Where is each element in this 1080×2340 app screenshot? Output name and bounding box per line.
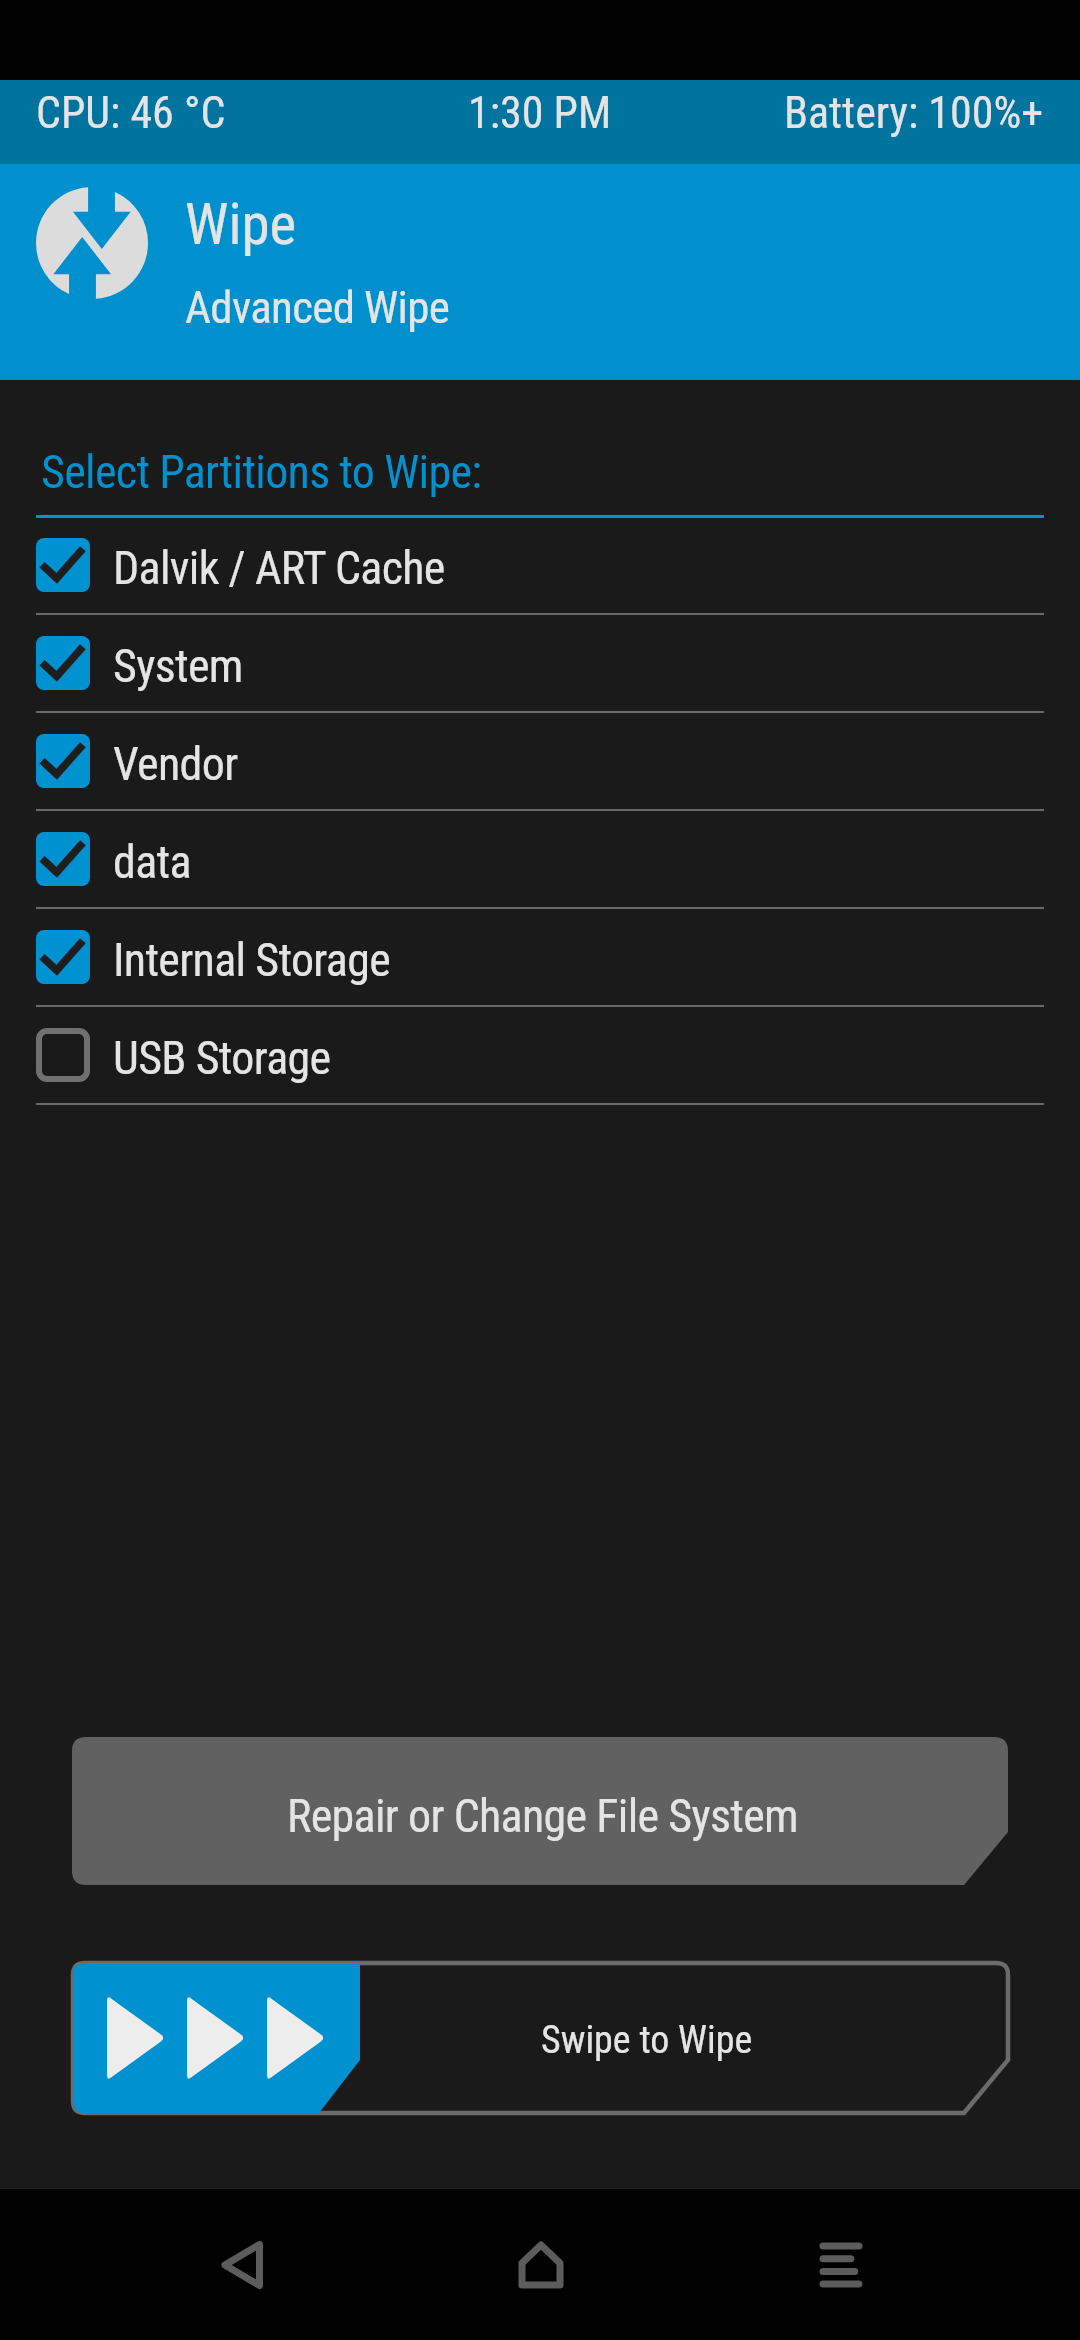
staticText: Swipe to Wipe [541,2018,753,2063]
staticText: CPU: 46 °C [36,87,226,139]
staticText: 1:30 PM [468,87,612,139]
button[interactable]: Swipe to Wipe [73,1963,1008,2113]
staticText: Dalvik / ART Cache [113,541,445,595]
staticText: System [113,639,243,693]
staticText: Repair or Change File System [287,1789,799,1843]
button[interactable]: Internal Storage [0,908,1080,1006]
button[interactable]: Home [465,2189,616,2340]
button[interactable]: Dalvik / ART Cache [0,516,1080,614]
button[interactable]: Vendor [0,712,1080,810]
staticText: Select Partitions to Wipe: [41,445,482,499]
staticText: Vendor [113,737,238,791]
staticText: Battery: 100%+ [784,87,1044,139]
staticText: Internal Storage [113,933,391,987]
button[interactable]: Recent apps [765,2189,916,2340]
staticText: data [113,835,191,889]
button[interactable]: data [0,810,1080,908]
button[interactable]: Back [165,2189,316,2340]
staticText: Wipe [185,191,297,258]
button[interactable]: Repair or Change File System [72,1737,1008,1885]
staticText: Advanced Wipe [185,281,450,334]
button[interactable]: System [0,614,1080,712]
staticText: USB Storage [113,1031,331,1085]
button[interactable]: USB Storage [0,1006,1080,1104]
